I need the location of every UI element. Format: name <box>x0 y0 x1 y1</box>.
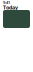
staticText: 9:41 <box>3 0 10 5</box>
staticText: Today <box>3 4 18 11</box>
